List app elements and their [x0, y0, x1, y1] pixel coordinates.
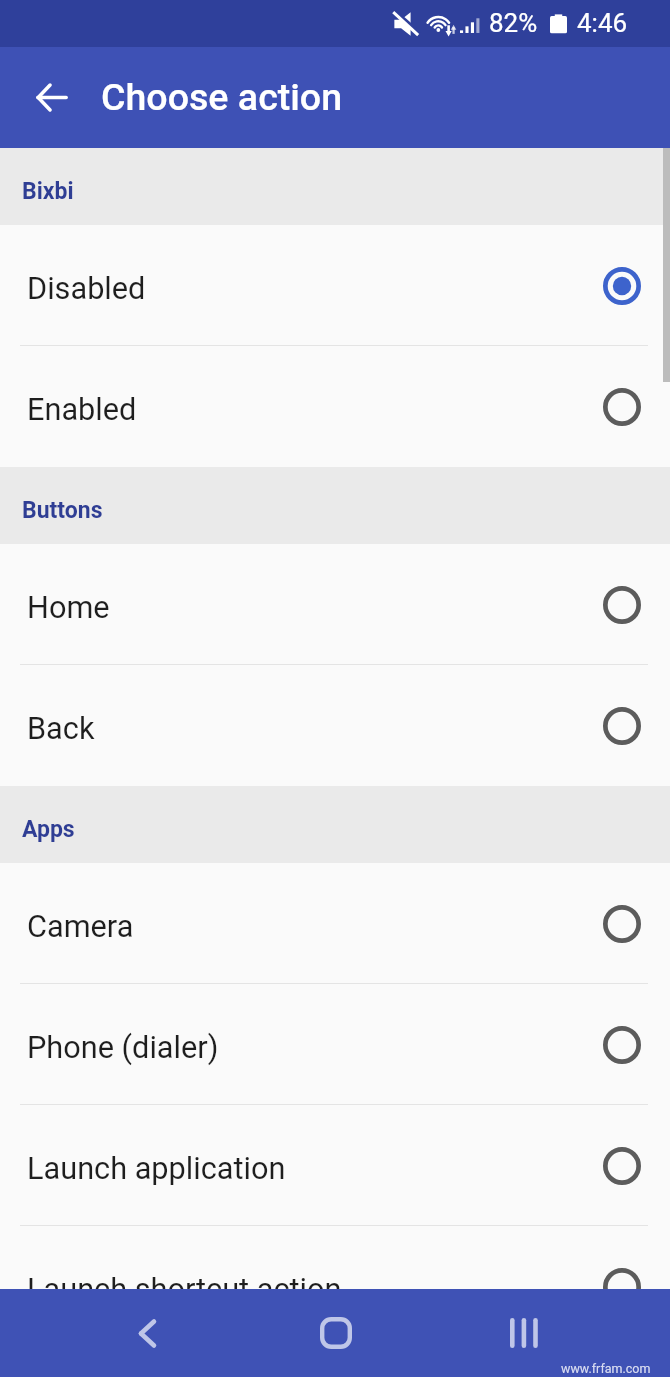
staticText: Apps	[22, 816, 75, 843]
staticText: Back	[27, 711, 601, 747]
staticText: Bixbi	[22, 178, 74, 205]
button[interactable]: Recent apps	[480, 1289, 568, 1377]
staticText: www.frfam.com	[561, 1361, 651, 1376]
button[interactable]: Navigate up	[26, 72, 77, 123]
staticText: Phone (dialer)	[27, 1030, 601, 1066]
button[interactable]: Launch shortcut action	[0, 1226, 670, 1289]
staticText: Launch application	[27, 1151, 601, 1187]
button[interactable]: Back	[0, 665, 670, 786]
staticText: Buttons	[22, 497, 103, 524]
button[interactable]: Phone (dialer)	[0, 984, 670, 1105]
staticText: 82%	[489, 8, 538, 38]
button[interactable]: Disabled	[0, 225, 670, 346]
button[interactable]: Launch application	[0, 1105, 670, 1226]
button[interactable]: Home	[0, 544, 670, 665]
button[interactable]: Enabled	[0, 346, 670, 467]
button[interactable]: Back	[103, 1289, 191, 1377]
staticText: Enabled	[27, 392, 601, 428]
button[interactable]: Home	[292, 1289, 380, 1377]
staticText: Home	[27, 590, 601, 626]
button[interactable]: Camera	[0, 863, 670, 984]
staticText: Camera	[27, 909, 601, 945]
staticText: 4:46	[577, 8, 628, 38]
staticText: Disabled	[27, 271, 601, 307]
staticText: Launch shortcut action	[27, 1272, 601, 1289]
staticText: Choose action	[101, 75, 343, 119]
